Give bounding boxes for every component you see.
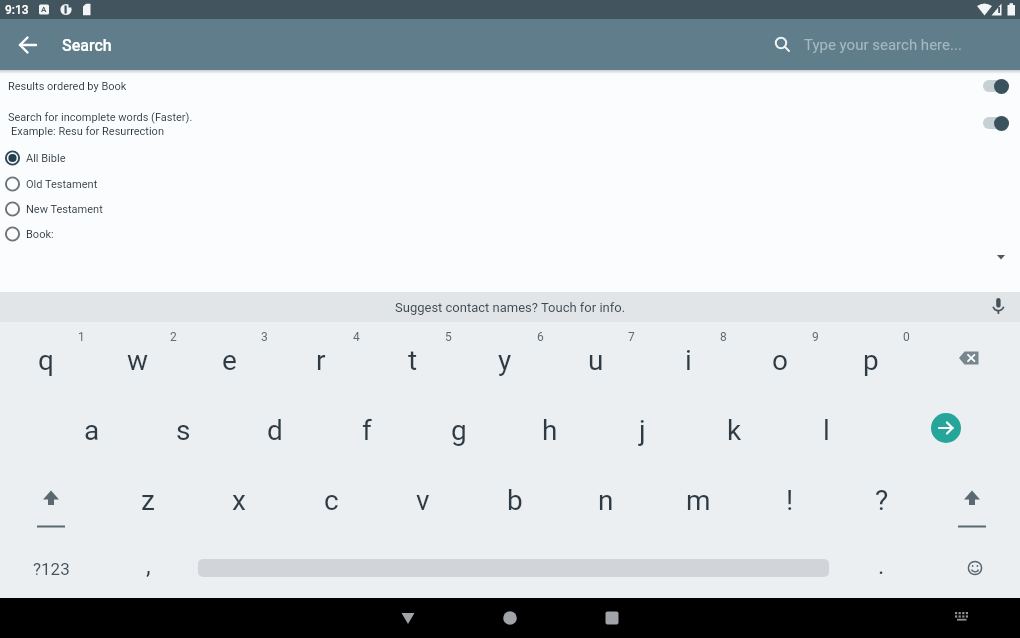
button[interactable]: m [654,468,742,532]
staticText: x [232,484,246,517]
staticText: r [316,344,326,377]
button[interactable]: Type your search here... [766,29,1016,61]
button[interactable]: p [827,328,915,392]
staticText: A [41,5,47,14]
button[interactable] [942,598,982,638]
button[interactable]: e [185,328,273,392]
button[interactable]: g [415,398,503,462]
button[interactable]: New Testament [0,196,240,222]
staticText: o [772,344,788,377]
button[interactable]: n [562,468,650,532]
staticText: ! [786,484,794,517]
button[interactable]: s [139,398,227,462]
staticText: t [408,344,418,377]
staticText: h [542,414,558,447]
staticText: d [267,414,283,447]
staticText: e [222,344,237,377]
staticText: c [324,484,339,517]
button[interactable]: x [195,468,283,532]
button[interactable]: z [104,468,192,532]
button[interactable]: h [506,398,594,462]
staticText: j [639,414,646,447]
staticText: 9 [812,330,819,344]
staticText: Example: Resu for Resurrection [11,125,164,138]
staticText: 7 [628,330,635,344]
staticText: u [588,344,604,377]
staticText: p [863,344,879,377]
button[interactable]: w [94,328,182,392]
button[interactable]: Search for incomplete words (Faster). [8,105,608,129]
button[interactable]: o [736,328,824,392]
staticText: q [38,344,54,377]
button[interactable]: y [461,328,549,392]
button[interactable]: a [48,398,136,462]
staticText: n [598,484,614,517]
button[interactable]: j [598,398,686,462]
button[interactable]: d [231,398,319,462]
button[interactable] [925,328,1013,392]
staticText: 4 [353,330,360,344]
staticText: . [878,552,885,580]
button[interactable]: c [287,468,375,532]
staticText: z [141,484,155,517]
staticText: a [84,414,100,447]
button[interactable]: r [277,328,365,392]
button[interactable] [984,293,1012,321]
button[interactable]: . [851,538,911,594]
button[interactable]: l [782,398,870,462]
staticText: k [727,414,742,447]
staticText: g [451,414,467,447]
staticText: 6 [537,330,544,344]
staticText: s [176,414,191,447]
staticText: 0 [903,330,910,344]
staticText: Old Testament [26,178,98,191]
button[interactable] [490,598,530,638]
button[interactable]: Old Testament [0,171,240,197]
button[interactable] [592,598,632,638]
staticText: 5 [445,330,452,344]
button[interactable]: Book: [0,221,240,247]
button[interactable] [388,598,428,638]
button[interactable]: u [552,328,640,392]
button[interactable] [961,554,989,582]
staticText: 9:13 [5,3,29,17]
staticText: , [146,552,151,580]
button[interactable]: b [471,468,559,532]
button[interactable]: k [690,398,778,462]
staticText: Search for incomplete words (Faster). [8,111,193,124]
button[interactable]: i [644,328,732,392]
button[interactable]: ! [746,468,834,532]
staticText: y [498,344,512,377]
button[interactable] [983,117,1009,129]
button[interactable]: Results ordered by Book [8,73,608,99]
button[interactable]: t [369,328,457,392]
staticText: New Testament [26,203,103,216]
button[interactable] [985,245,1017,269]
button[interactable]: All Bible [0,145,240,171]
button[interactable] [931,413,961,443]
staticText: ?123 [33,559,70,579]
button[interactable] [932,468,1012,532]
staticText: Search [62,36,112,55]
staticText: w [127,344,149,377]
staticText: Results ordered by Book [8,80,127,93]
staticText: v [416,484,430,517]
staticText: f [362,414,372,447]
staticText: All Bible [26,152,66,165]
button[interactable]: f [323,398,411,462]
staticText: i [685,344,692,377]
staticText: 3 [261,330,268,344]
staticText: Type your search here... [804,36,962,54]
button[interactable]: ? [838,468,926,532]
button[interactable]: q [2,328,90,392]
button[interactable]: ?123 [7,541,95,597]
button[interactable] [0,292,1020,322]
button[interactable]: , [118,538,178,594]
staticText: ? [875,484,889,517]
button[interactable] [983,80,1009,92]
button[interactable] [11,468,91,532]
staticText: 2 [170,330,177,344]
button[interactable] [12,29,44,61]
button[interactable]: v [379,468,467,532]
